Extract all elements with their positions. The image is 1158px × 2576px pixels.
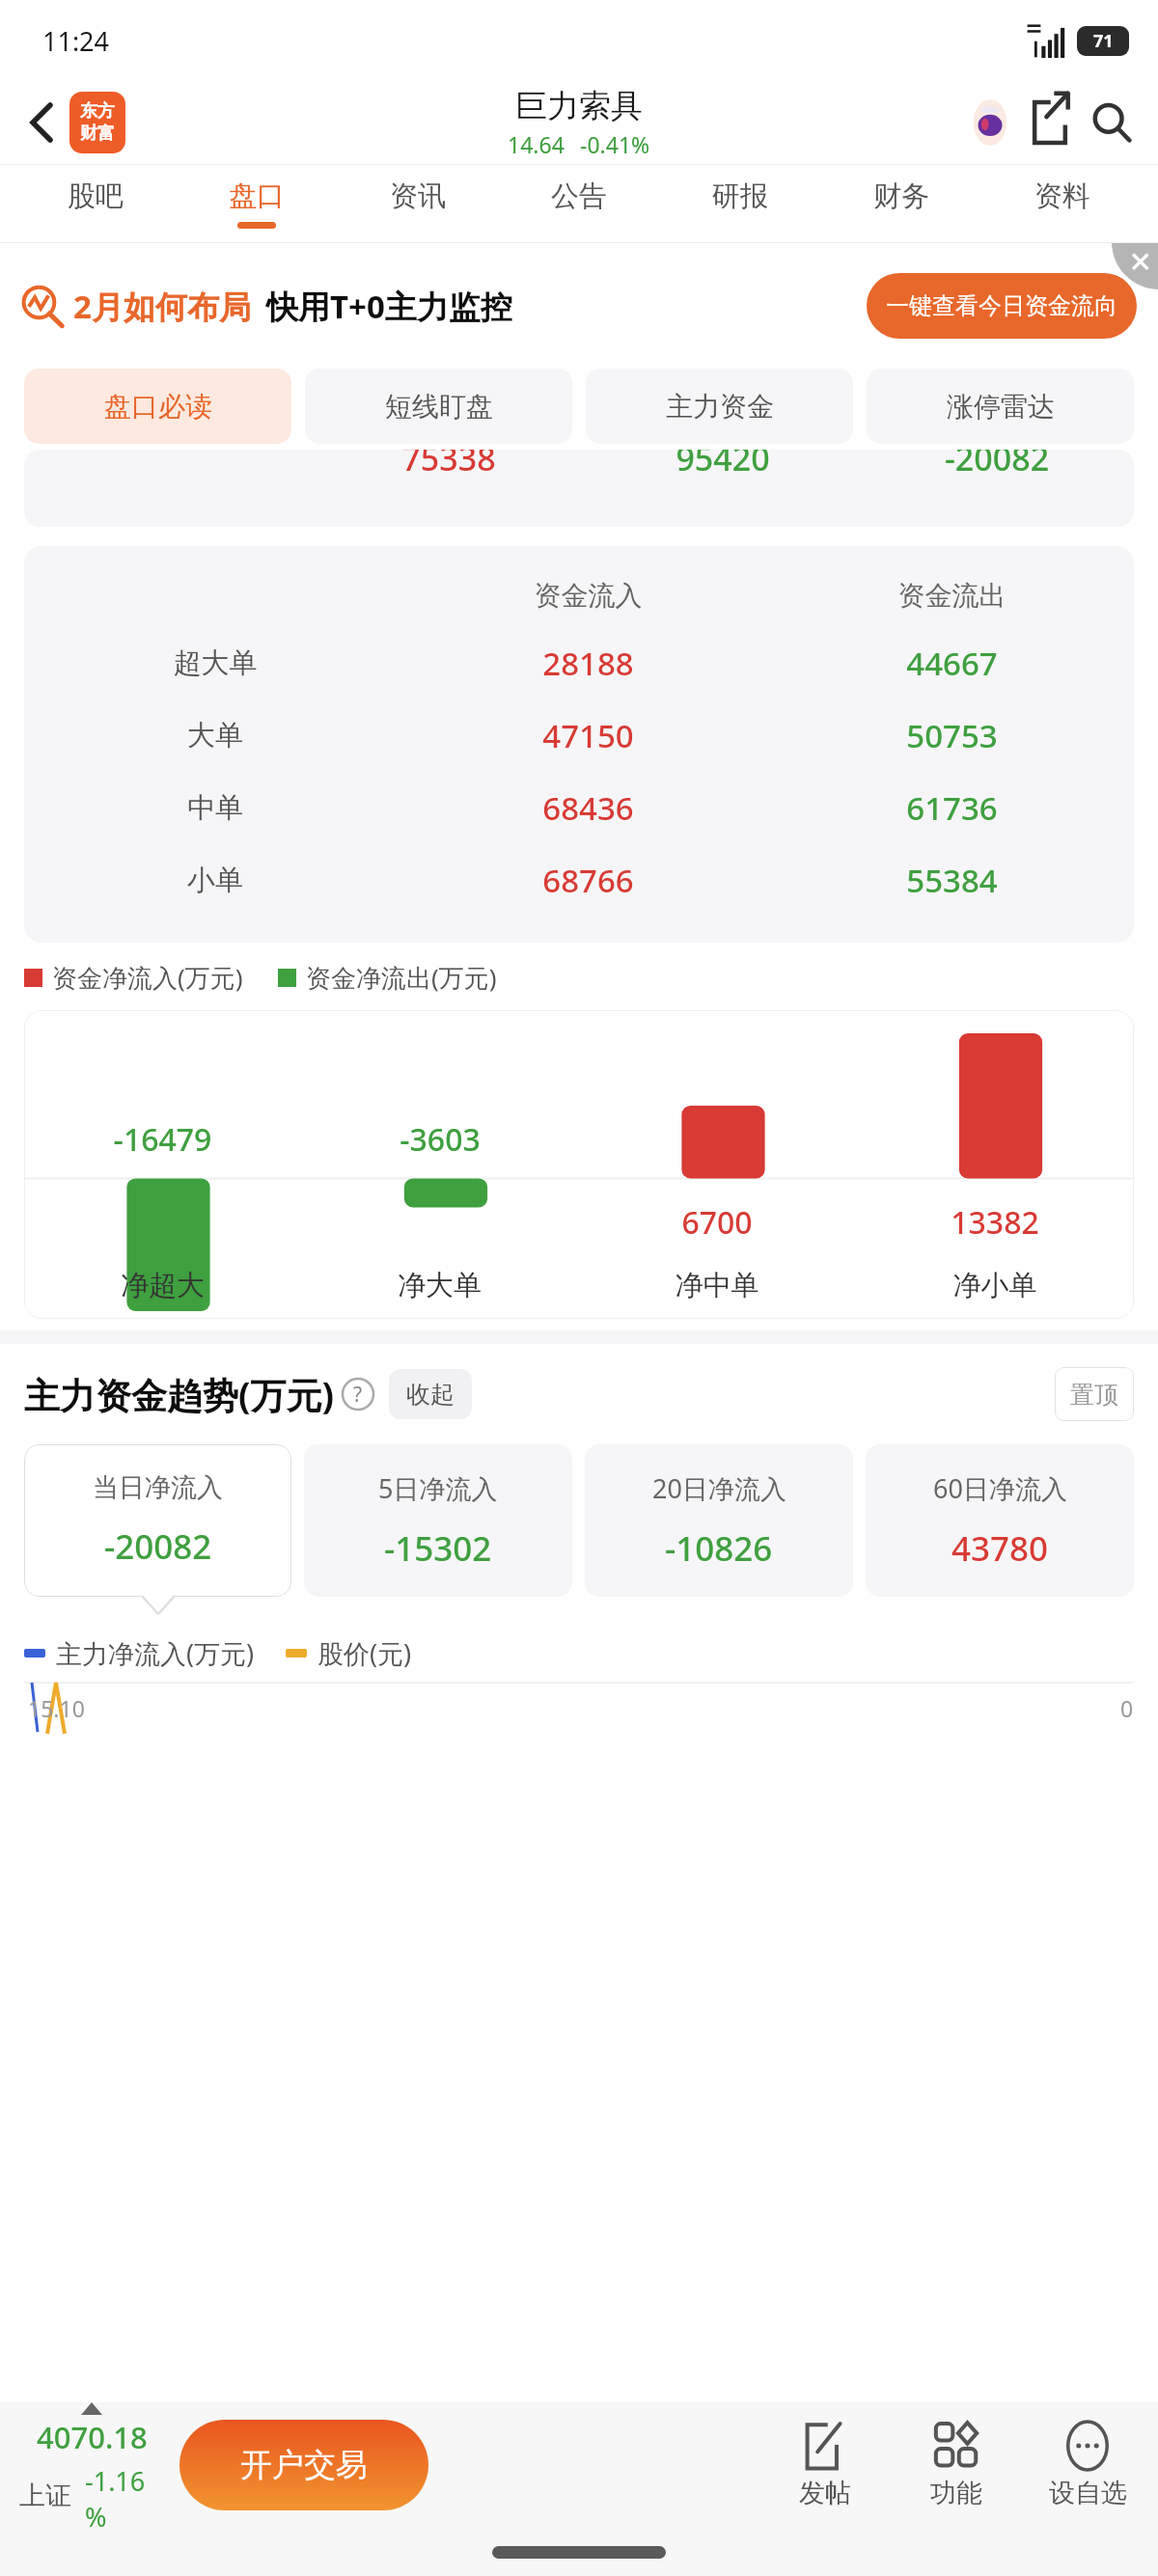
staticText: 主力净流入(万元) — [56, 1635, 255, 1671]
button[interactable]: 60日净流入 — [866, 1444, 1134, 1597]
staticText: 资料 — [1034, 178, 1090, 214]
staticText: 11:24 — [42, 23, 110, 59]
staticText: 95420 — [586, 450, 860, 480]
staticText: 设自选 — [1049, 2477, 1127, 2509]
staticText: 68436 — [406, 786, 770, 830]
button[interactable]: 涨停雷达 — [867, 369, 1134, 444]
staticText: 0 — [1120, 1693, 1134, 1723]
button[interactable]: 20日净流入 — [585, 1444, 853, 1597]
staticText: 小单 — [24, 863, 406, 898]
staticText: 盘口 — [229, 178, 285, 214]
staticText: 上证 — [19, 2480, 71, 2512]
staticText: 公告 — [551, 178, 607, 214]
button[interactable]: 东方 — [69, 92, 125, 153]
staticText: 5日净流入 — [378, 1470, 498, 1506]
button[interactable]: Add to watchlist — [1036, 2421, 1139, 2509]
button[interactable]: 盘口 — [176, 165, 337, 242]
staticText: 75338 — [312, 450, 586, 480]
staticText: 盘口必读 — [104, 390, 212, 424]
staticText: 当日净流入 — [93, 1471, 223, 1504]
staticText: 13382 — [856, 1201, 1134, 1244]
button[interactable]: Help — [341, 1377, 375, 1411]
staticText: 主力资金趋势(万元) — [24, 1370, 335, 1419]
staticText: 资金净流出(万元) — [306, 960, 497, 995]
button[interactable]: 公告 — [498, 165, 659, 242]
staticText: 55384 — [770, 859, 1134, 902]
staticText: 60日净流入 — [933, 1470, 1067, 1506]
staticText: 财务 — [873, 178, 929, 214]
staticText: 东方 — [80, 100, 115, 123]
button[interactable]: AI assistant — [961, 94, 1019, 151]
staticText: 净小单 — [856, 1268, 1134, 1303]
staticText: 61736 — [770, 786, 1134, 830]
staticText: 15.10 — [28, 1693, 85, 1723]
button[interactable]: Back — [12, 94, 69, 151]
staticText: 资金流出 — [770, 579, 1134, 613]
staticText: 功能 — [930, 2477, 982, 2509]
staticText: 短线盯盘 — [385, 390, 493, 424]
button[interactable]: 5日净流入 — [304, 1444, 572, 1597]
staticText: 14.64 — [508, 129, 565, 159]
button[interactable]: 财务 — [820, 165, 981, 242]
staticText: 研报 — [712, 178, 768, 214]
button[interactable]: 主力资金 — [586, 369, 853, 444]
staticText: ? — [353, 1381, 363, 1409]
button[interactable]: Search — [1081, 92, 1143, 153]
staticText: 净中单 — [578, 1268, 856, 1303]
button[interactable]: 开户交易 — [179, 2420, 428, 2510]
button[interactable]: 研报 — [659, 165, 820, 242]
staticText: 净超大 — [24, 1268, 301, 1303]
button[interactable]: 一键查看今日资金流向 — [867, 273, 1137, 339]
staticText: 资金净流入(万元) — [52, 960, 243, 995]
staticText: 巨力索具 — [515, 86, 643, 126]
staticText: 主力资金 — [666, 390, 774, 424]
staticText: 财富 — [80, 123, 115, 145]
staticText: 快用T+0主力监控 — [266, 285, 512, 328]
staticText: 2月如何布局 — [73, 285, 251, 328]
button[interactable]: 4070.18 — [19, 2402, 164, 2528]
staticText: 28188 — [406, 642, 770, 685]
staticText: -20082 — [104, 1523, 212, 1570]
staticText: 大单 — [24, 718, 406, 754]
staticText: -1.16% — [85, 2463, 164, 2528]
staticText: -16479 — [24, 1118, 301, 1161]
staticText: 71 — [1093, 29, 1114, 53]
staticText: 6700 — [578, 1201, 856, 1244]
staticText: 50753 — [770, 714, 1134, 757]
staticText: -10826 — [665, 1525, 773, 1572]
staticText: 44667 — [770, 642, 1134, 685]
button[interactable]: 盘口必读 — [24, 369, 291, 444]
staticText: 净大单 — [301, 1268, 578, 1303]
button[interactable]: Create post — [774, 2421, 876, 2509]
staticText: 超大单 — [24, 645, 406, 681]
staticText: 资金流入 — [406, 579, 770, 613]
staticText: 涨停雷达 — [947, 390, 1055, 424]
button[interactable]: 资讯 — [337, 165, 498, 242]
staticText: 43780 — [951, 1525, 1049, 1572]
staticText: -20082 — [860, 450, 1134, 480]
button[interactable]: 短线盯盘 — [305, 369, 572, 444]
button[interactable]: Features — [905, 2421, 1007, 2509]
button[interactable]: Share — [1019, 92, 1081, 153]
staticText: -0.41% — [580, 129, 650, 159]
staticText: 发帖 — [799, 2477, 851, 2509]
staticText: -15302 — [384, 1525, 492, 1572]
staticText: 20日净流入 — [652, 1470, 786, 1506]
staticText: 4070.18 — [37, 2417, 148, 2457]
staticText: 资讯 — [390, 178, 446, 214]
staticText: 置顶 — [1070, 1380, 1118, 1410]
staticText: 47150 — [406, 714, 770, 757]
button[interactable]: Close ad — [1112, 243, 1158, 289]
staticText: 一键查看今日资金流向 — [886, 291, 1117, 320]
button[interactable]: 收起 — [389, 1369, 472, 1419]
staticText: 68766 — [406, 859, 770, 902]
button[interactable]: 当日净流入 — [24, 1444, 291, 1597]
staticText: 股吧 — [68, 178, 124, 214]
staticText: 收起 — [406, 1380, 455, 1410]
staticText: 股价(元) — [317, 1635, 412, 1671]
button[interactable]: 股吧 — [15, 165, 176, 242]
button[interactable]: 资料 — [981, 165, 1143, 242]
staticText: 中单 — [24, 790, 406, 826]
button[interactable]: 置顶 — [1055, 1367, 1134, 1421]
staticText: -3603 — [301, 1118, 579, 1161]
